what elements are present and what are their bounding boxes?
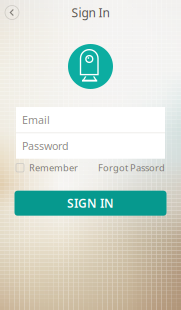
button[interactable]: Forgot Passord bbox=[98, 161, 165, 174]
button[interactable]: Password bbox=[16, 133, 165, 159]
staticText: SIGN IN bbox=[67, 195, 114, 211]
button[interactable]: Email bbox=[16, 107, 165, 132]
button[interactable]: Remember bbox=[16, 161, 78, 174]
staticText: Forgot Passord bbox=[98, 161, 165, 174]
staticText: Sign In bbox=[71, 4, 109, 20]
button[interactable]: SIGN IN bbox=[14, 191, 166, 216]
button[interactable]: Back bbox=[5, 5, 19, 19]
staticText: Remember bbox=[29, 161, 78, 174]
staticText: Email bbox=[22, 113, 50, 127]
staticText: Password bbox=[22, 139, 69, 153]
